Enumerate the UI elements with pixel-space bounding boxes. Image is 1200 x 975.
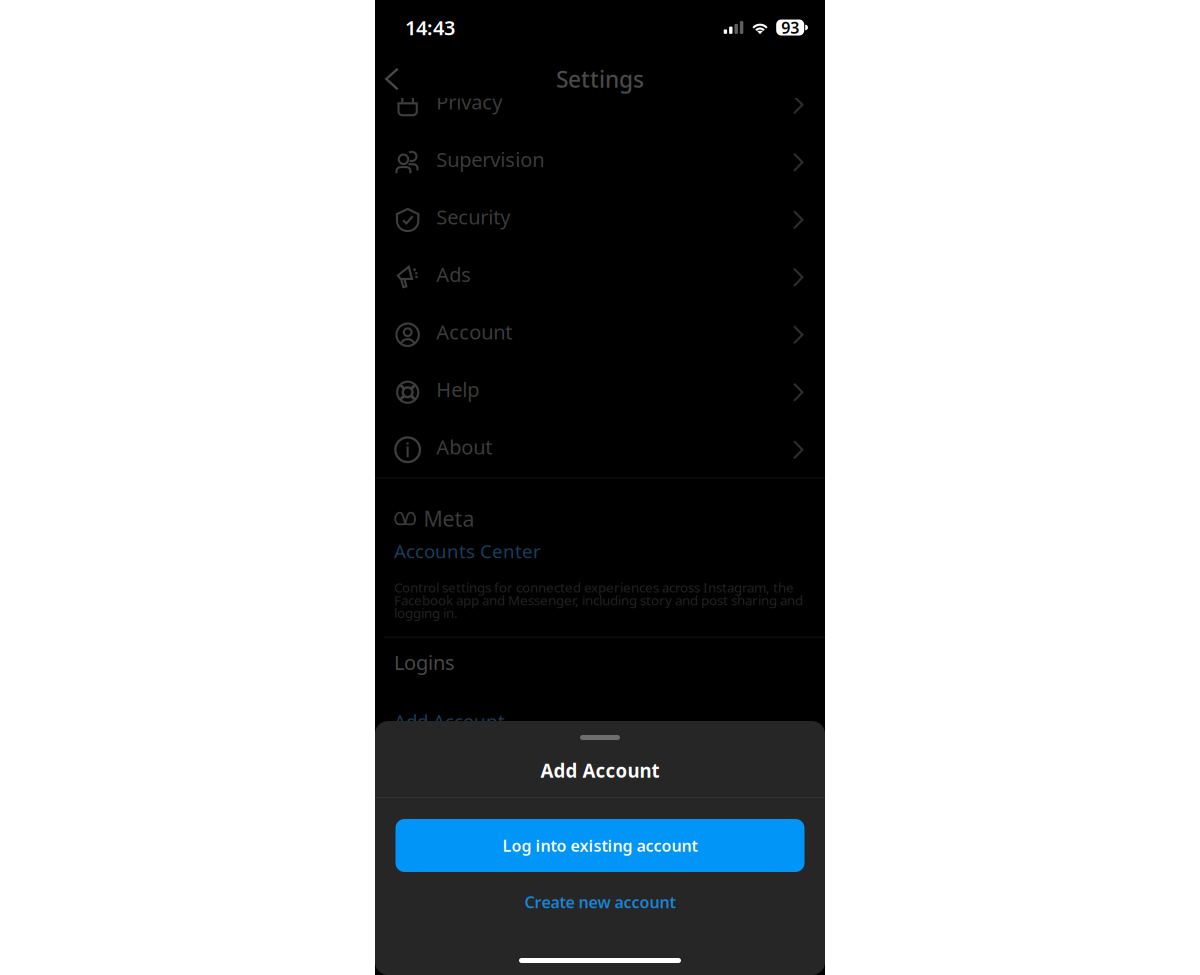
staticText: i bbox=[405, 438, 410, 461]
staticText: Security bbox=[436, 203, 510, 230]
button[interactable]: Supervision bbox=[375, 130, 825, 188]
button[interactable]: Help bbox=[375, 360, 825, 418]
button[interactable]: Ads bbox=[375, 245, 825, 303]
staticText: Log into existing account bbox=[502, 835, 697, 856]
button[interactable]: Back bbox=[377, 56, 407, 102]
staticText: 93 bbox=[781, 17, 799, 38]
staticText: Add Account bbox=[540, 758, 659, 783]
staticText: Control settings for connected experienc… bbox=[394, 578, 803, 622]
staticText: 14:43 bbox=[405, 14, 455, 41]
button[interactable]: Create new account bbox=[395, 876, 804, 928]
button[interactable]: Privacy bbox=[375, 73, 825, 130]
button[interactable]: Accounts Center bbox=[394, 538, 541, 563]
staticText: Accounts Center bbox=[394, 539, 541, 563]
staticText: Settings bbox=[556, 64, 644, 94]
staticText: About bbox=[436, 433, 492, 460]
staticText: Account bbox=[436, 318, 512, 345]
button[interactable]: Account bbox=[375, 303, 825, 360]
staticText: Supervision bbox=[436, 146, 544, 173]
staticText: Ads bbox=[436, 261, 471, 288]
button[interactable]: Security bbox=[375, 188, 825, 245]
button[interactable]: Log into existing account bbox=[395, 819, 804, 872]
staticText: Logins bbox=[394, 649, 455, 675]
button[interactable]: i bbox=[375, 418, 825, 475]
staticText: Add Account bbox=[394, 709, 505, 733]
button[interactable]: Add Account bbox=[394, 709, 505, 734]
staticText: Privacy bbox=[436, 88, 502, 115]
staticText: Create new account bbox=[524, 891, 675, 913]
staticText: Help bbox=[436, 376, 479, 403]
staticText: Meta bbox=[423, 504, 474, 533]
